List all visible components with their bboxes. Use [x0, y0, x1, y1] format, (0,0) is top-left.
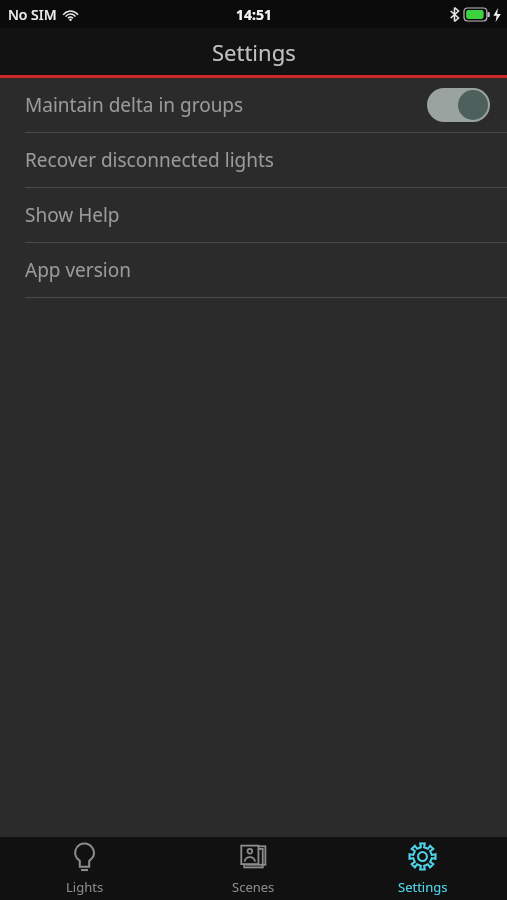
staticText: No SIM — [8, 5, 57, 24]
staticText: Maintain delta in groups — [25, 92, 427, 118]
button[interactable]: App version — [0, 243, 507, 297]
button[interactable]: Maintain delta in groups toggle — [427, 88, 490, 122]
button[interactable]: Scenes — [169, 837, 338, 900]
button[interactable]: Recover disconnected lights — [0, 133, 507, 187]
button[interactable]: Lights — [0, 837, 169, 900]
button[interactable]: Maintain delta in groups — [0, 78, 507, 132]
staticText: Settings — [398, 878, 448, 896]
staticText: Lights — [66, 878, 104, 896]
button[interactable]: Show Help — [0, 188, 507, 242]
staticText: Recover disconnected lights — [25, 147, 490, 173]
staticText: Settings — [212, 37, 296, 67]
staticText: Scenes — [232, 878, 275, 896]
button[interactable]: Settings — [338, 837, 507, 900]
staticText: 14:51 — [236, 5, 272, 24]
staticText: Show Help — [25, 202, 490, 228]
staticText: App version — [25, 257, 490, 283]
